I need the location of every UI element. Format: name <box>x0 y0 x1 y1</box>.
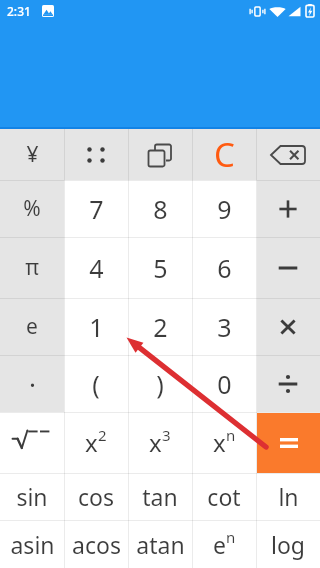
button[interactable]: Square root <box>0 412 64 473</box>
button[interactable]: ( <box>64 355 128 412</box>
staticText: x <box>213 426 226 459</box>
staticText: n <box>226 425 236 445</box>
button[interactable]: cot <box>192 473 256 520</box>
button[interactable]: sin <box>0 473 64 520</box>
button[interactable]: divide <box>256 355 320 412</box>
staticText: acos <box>72 529 121 560</box>
button[interactable]: 7 <box>64 180 128 237</box>
button[interactable]: e^n <box>192 520 256 568</box>
button[interactable]: x to the n <box>192 412 256 473</box>
staticText: 0 <box>217 367 232 401</box>
staticText: 1 <box>89 310 104 344</box>
staticText: n <box>226 527 236 547</box>
button[interactable]: 1 <box>64 298 128 355</box>
staticText: atan <box>136 529 185 560</box>
staticText: 2 <box>153 310 168 344</box>
button[interactable]: asin <box>0 520 64 568</box>
button[interactable]: minus <box>256 237 320 298</box>
button[interactable]: 9 <box>192 180 256 237</box>
staticText: 2:31 <box>7 3 31 19</box>
staticText: · <box>29 366 36 401</box>
staticText: 6 <box>217 251 232 285</box>
staticText: ¥ <box>26 140 39 169</box>
staticText: x <box>149 426 162 459</box>
button[interactable]: Backspace <box>256 129 320 180</box>
staticText: sin <box>16 481 48 512</box>
staticText: x <box>85 426 98 459</box>
button[interactable]: 6 <box>192 237 256 298</box>
button[interactable]: ) <box>128 355 192 412</box>
button[interactable]: 3 <box>192 298 256 355</box>
button[interactable]: x squared <box>64 412 128 473</box>
button[interactable]: 5 <box>128 237 192 298</box>
button[interactable]: acos <box>64 520 128 568</box>
button[interactable]: plus <box>256 180 320 237</box>
button[interactable]: 0 <box>192 355 256 412</box>
button[interactable]: ln <box>256 473 320 520</box>
staticText: 9 <box>217 192 232 226</box>
staticText: 4 <box>89 251 104 285</box>
button[interactable]: 4 <box>64 237 128 298</box>
button[interactable]: atan <box>128 520 192 568</box>
button[interactable]: Yen <box>0 129 64 180</box>
button[interactable]: Equals <box>257 413 320 473</box>
button[interactable]: % <box>0 180 64 237</box>
staticText: asin <box>10 529 55 560</box>
staticText: 7 <box>89 192 104 226</box>
staticText: 3 <box>217 310 232 344</box>
button[interactable]: x cubed <box>128 412 192 473</box>
button[interactable]: π <box>0 237 64 298</box>
staticText: cot <box>207 481 241 512</box>
staticText: π <box>25 253 39 282</box>
staticText: e <box>213 529 226 560</box>
button[interactable]: 8 <box>128 180 192 237</box>
button[interactable]: · <box>0 355 64 412</box>
staticText: 3 <box>162 425 171 445</box>
button[interactable]: cos <box>64 473 128 520</box>
staticText: 8 <box>153 192 168 226</box>
button[interactable]: Clear <box>192 129 256 180</box>
button[interactable]: log <box>256 520 320 568</box>
staticText: C <box>214 132 235 177</box>
staticText: % <box>23 194 41 223</box>
staticText: log <box>271 529 305 560</box>
staticText: e <box>26 312 38 341</box>
button[interactable]: Grid <box>64 129 128 180</box>
button[interactable]: 2 <box>128 298 192 355</box>
staticText: cos <box>78 481 114 512</box>
button[interactable]: Copy <box>128 129 192 180</box>
button[interactable]: tan <box>128 473 192 520</box>
staticText: ) <box>156 367 164 401</box>
button[interactable]: e <box>0 298 64 355</box>
button[interactable]: times <box>256 298 320 355</box>
staticText: 2 <box>98 425 107 445</box>
staticText: tan <box>142 481 178 512</box>
staticText: 5 <box>153 251 168 285</box>
staticText: ln <box>278 481 299 512</box>
staticText: ( <box>92 367 100 401</box>
